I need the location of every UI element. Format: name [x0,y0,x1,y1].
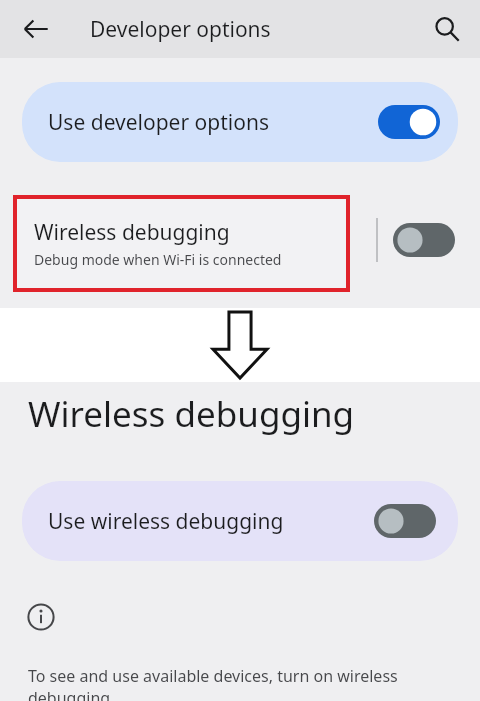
staticText: Wireless debugging [28,390,355,438]
button[interactable]: Wireless debugging [17,199,346,288]
button[interactable]: Search [424,6,470,52]
staticText: Use wireless debugging [48,507,374,536]
staticText: Wireless debugging [34,218,230,247]
staticText: Developer options [90,15,271,44]
staticText: To see and use available devices, turn o… [28,665,410,701]
button[interactable]: Wireless debugging toggle [392,216,456,264]
staticText: Debug mode when Wi-Fi is connected [34,250,282,269]
button[interactable]: Use wireless debugging [22,481,458,561]
staticText: Use developer options [48,108,378,137]
button[interactable]: Use developer options [22,82,458,162]
button[interactable]: Back [12,5,60,53]
